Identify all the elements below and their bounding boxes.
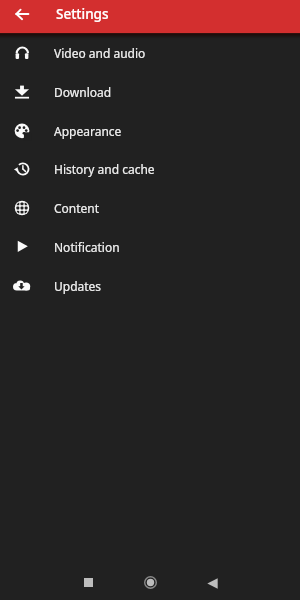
staticText: History and cache — [54, 161, 155, 177]
button[interactable]: Notification — [0, 227, 300, 266]
staticText: Appearance — [54, 123, 122, 139]
staticText: Notification — [54, 239, 120, 255]
staticText: Video and audio — [54, 45, 146, 61]
button[interactable]: Back — [8, 0, 36, 28]
button[interactable]: Back — [193, 564, 231, 600]
button[interactable]: Content — [0, 188, 300, 227]
staticText: Settings — [56, 5, 109, 23]
button[interactable]: Video and audio — [0, 33, 300, 72]
button[interactable]: History and cache — [0, 149, 300, 188]
button[interactable]: Updates — [0, 266, 300, 305]
button[interactable]: Home — [131, 563, 169, 600]
staticText: Download — [54, 84, 112, 100]
button[interactable]: Download — [0, 72, 300, 111]
button[interactable]: Recents — [69, 563, 107, 600]
button[interactable]: Appearance — [0, 111, 300, 150]
staticText: Updates — [54, 278, 102, 294]
staticText: Content — [54, 200, 100, 216]
